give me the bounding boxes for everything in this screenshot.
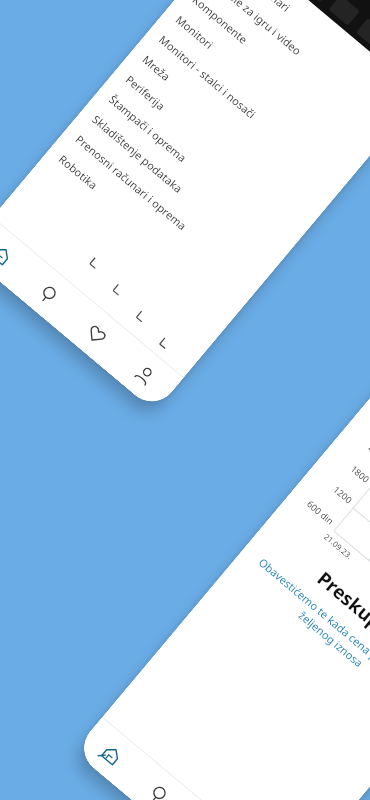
button[interactable]: Prenosni računari i oprema	[59, 118, 267, 298]
staticText: Monitori	[173, 12, 217, 52]
button[interactable]: Search	[11, 257, 87, 331]
button[interactable]: Komponente	[176, 0, 370, 159]
staticText: 600 din	[305, 497, 337, 527]
button[interactable]: Štampači i oprema	[92, 78, 300, 259]
staticText: Štampači i oprema	[106, 92, 190, 165]
button[interactable]: Skladištenje podataka	[75, 98, 284, 279]
button[interactable]: Favorites	[58, 297, 135, 371]
button[interactable]: Monitori - stalci i nosači	[142, 18, 350, 199]
staticText: Robotika	[56, 151, 101, 192]
staticText: 1200	[331, 483, 355, 506]
button[interactable]: Home	[73, 717, 149, 791]
staticText: Periferija	[123, 72, 168, 113]
staticText: Prenosni računari i oprema	[73, 131, 190, 234]
button[interactable]: Konzole za igru i video	[192, 0, 370, 139]
button[interactable]: Mreža	[125, 38, 334, 219]
staticText: 1800	[349, 462, 370, 485]
button[interactable]: Home	[0, 217, 39, 291]
staticText: Preskupo?	[264, 526, 370, 688]
button[interactable]: Robotika	[42, 138, 250, 318]
staticText: Komponente	[190, 0, 251, 47]
staticText: Konzole za igru i video	[206, 0, 305, 58]
button[interactable]: Profile	[107, 338, 183, 412]
staticText: Monitori - stalci i nosači	[156, 32, 259, 122]
button[interactable]: Gotovi računari	[209, 0, 370, 119]
button[interactable]: Obavestićemo te kada cena padne ispod že…	[244, 553, 370, 713]
staticText: Mreža	[139, 52, 174, 84]
button[interactable]: Monitori	[159, 0, 367, 179]
staticText: Gotovi računari	[223, 0, 294, 15]
button[interactable]: Periferija	[109, 58, 317, 239]
button[interactable]: Search	[121, 757, 197, 800]
staticText: Skladištenje podataka	[89, 111, 186, 196]
staticText: 21.09.23.	[322, 531, 355, 561]
staticText: 2400	[367, 441, 370, 464]
staticText: Obavestićemo te kada cena padne ispod že…	[244, 553, 370, 713]
